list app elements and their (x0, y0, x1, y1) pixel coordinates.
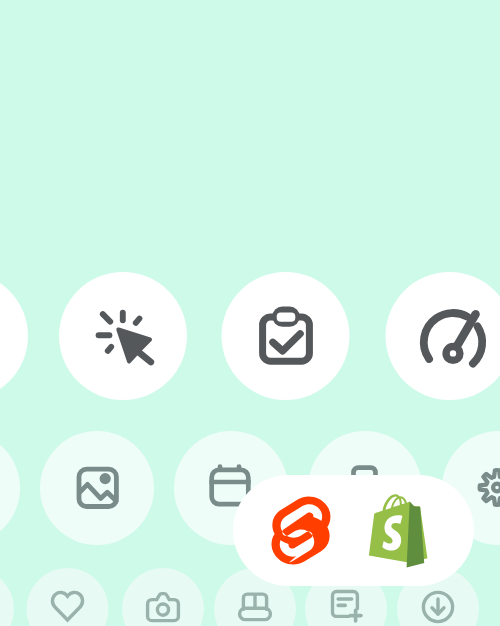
button[interactable] (0, 0, 500, 626)
